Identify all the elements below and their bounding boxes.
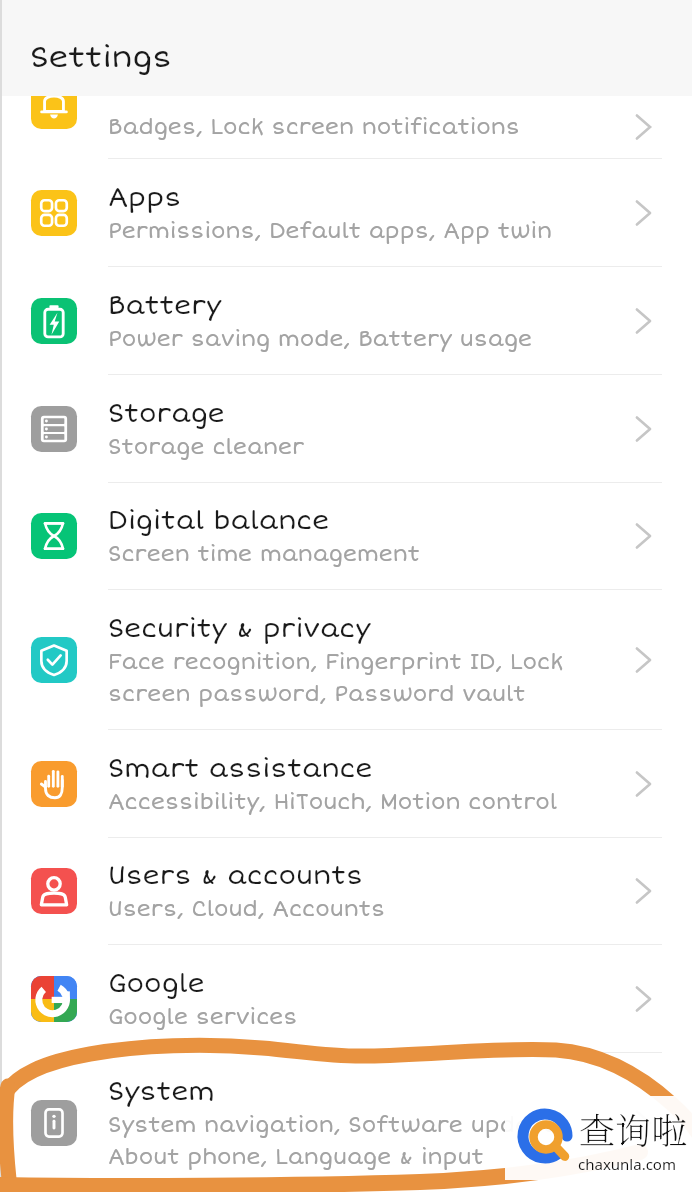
button[interactable]: System	[0, 1053, 692, 1192]
button[interactable]: Battery	[0, 267, 692, 374]
staticText: 查询啦	[579, 1103, 688, 1155]
other: Open Google	[634, 987, 658, 1011]
staticText: Screen time management	[108, 541, 420, 567]
staticText: Storage cleaner	[108, 434, 305, 460]
other: Open System	[634, 1111, 658, 1135]
staticText: Storage	[108, 398, 225, 430]
staticText: Smart assistance	[108, 753, 373, 785]
staticText: Users, Cloud, Accounts	[108, 896, 385, 922]
staticText: System	[108, 1076, 215, 1108]
other: Open Digital balance	[634, 524, 658, 548]
staticText: Security & privacy	[108, 613, 371, 645]
staticText: Google services	[108, 1004, 298, 1030]
staticText: chaxunla.com	[578, 1154, 676, 1174]
other: Open	[634, 115, 658, 139]
button[interactable]: Security & privacy	[0, 590, 692, 729]
staticText: Apps	[108, 182, 182, 214]
staticText: Power saving mode, Battery usage	[108, 326, 533, 352]
button[interactable]: Smart assistance	[0, 730, 692, 837]
staticText: screen password, Password vault	[108, 681, 526, 707]
staticText: Permissions, Default apps, App twin	[108, 218, 552, 244]
staticText: About phone, Language & input	[108, 1144, 484, 1170]
staticText: Digital balance	[108, 505, 330, 537]
other: Open Storage	[634, 417, 658, 441]
button[interactable]: Users & accounts	[0, 838, 692, 944]
button[interactable]: Digital balance	[0, 483, 692, 589]
other: Open Security & privacy	[634, 648, 658, 672]
staticText: Settings	[30, 39, 172, 76]
staticText: Users & accounts	[108, 860, 363, 892]
staticText: Face recognition, Fingerprint ID, Lock	[108, 649, 564, 675]
button[interactable]: Storage	[0, 375, 692, 482]
staticText: Google	[108, 968, 205, 1000]
other: Open Users & accounts	[634, 879, 658, 903]
button[interactable]: Badges, Lock screen notifications	[0, 56, 692, 158]
other: Open Apps	[634, 201, 658, 225]
button[interactable]: Apps	[0, 159, 692, 266]
staticText: Badges, Lock screen notifications	[108, 114, 520, 140]
other: Open Battery	[634, 309, 658, 333]
other: Open Smart assistance	[634, 772, 658, 796]
button[interactable]: Google	[0, 945, 692, 1052]
staticText: System navigation, Software update	[108, 1112, 558, 1138]
staticText: Accessibility, HiTouch, Motion control	[108, 789, 558, 815]
staticText: Battery	[108, 290, 222, 322]
